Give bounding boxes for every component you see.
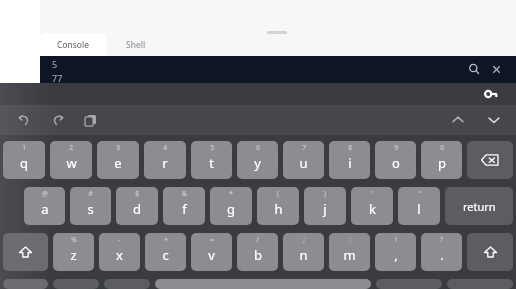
- button[interactable]: 8: [329, 141, 370, 179]
- staticText: r: [162, 154, 168, 172]
- staticText: 77: [52, 72, 63, 84]
- staticText: 7: [302, 143, 306, 152]
- staticText: 6: [256, 143, 260, 152]
- button[interactable]: Period: [376, 279, 442, 289]
- button[interactable]: 4: [144, 141, 186, 179]
- button[interactable]: /: [237, 233, 278, 271]
- button[interactable]: 1: [3, 141, 45, 179]
- button[interactable]: Previous: [446, 108, 470, 132]
- button[interactable]: Close: [486, 59, 506, 79]
- staticText: /: [256, 235, 259, 244]
- button[interactable]: Undo: [12, 108, 36, 132]
- staticText: a: [41, 200, 49, 218]
- button[interactable]: Backspace: [467, 141, 513, 179]
- staticText: +: [164, 235, 168, 244]
- staticText: s: [87, 200, 94, 218]
- button[interactable]: return: [445, 187, 513, 225]
- staticText: :: [349, 235, 351, 244]
- staticText: @: [42, 189, 48, 198]
- button[interactable]: Language: [104, 279, 150, 289]
- button[interactable]: Paste: [78, 108, 102, 132]
- staticText: 9: [394, 143, 398, 152]
- staticText: $: [135, 189, 139, 198]
- button[interactable]: 7: [283, 141, 324, 179]
- staticText: i: [348, 154, 352, 172]
- button[interactable]: !: [375, 233, 416, 271]
- staticText: h: [274, 200, 283, 218]
- staticText: 0: [440, 143, 444, 152]
- staticText: d: [133, 200, 141, 218]
- button[interactable]: ": [398, 187, 440, 225]
- button[interactable]: 5: [191, 141, 232, 179]
- staticText: q: [20, 154, 28, 172]
- staticText: o: [392, 154, 400, 172]
- staticText: c: [162, 246, 169, 264]
- button[interactable]: @: [24, 187, 65, 225]
- staticText: .: [440, 246, 444, 264]
- staticText: w: [66, 154, 77, 172]
- staticText: 2: [69, 143, 73, 152]
- staticText: 3: [116, 143, 120, 152]
- button[interactable]: ): [304, 187, 346, 225]
- button[interactable]: $: [116, 187, 158, 225]
- button[interactable]: Passwords: [480, 83, 502, 105]
- staticText: m: [343, 246, 356, 264]
- staticText: e: [114, 154, 122, 172]
- staticText: ': [371, 189, 373, 198]
- button[interactable]: (: [257, 187, 299, 225]
- button[interactable]: ;: [283, 233, 324, 271]
- staticText: ): [324, 189, 326, 198]
- staticText: 5: [210, 143, 214, 152]
- staticText: k: [369, 200, 376, 218]
- button[interactable]: Shift: [3, 233, 48, 271]
- button[interactable]: *: [210, 187, 252, 225]
- staticText: 5: [52, 58, 58, 70]
- staticText: (: [277, 189, 279, 198]
- button[interactable]: &: [163, 187, 205, 225]
- button[interactable]: +: [145, 233, 186, 271]
- staticText: g: [227, 200, 235, 218]
- button[interactable]: 2: [50, 141, 92, 179]
- button[interactable]: :: [329, 233, 370, 271]
- staticText: j: [323, 200, 327, 218]
- staticText: z: [70, 246, 77, 264]
- button[interactable]: Search: [464, 59, 484, 79]
- button[interactable]: 3: [97, 141, 139, 179]
- button[interactable]: 9: [375, 141, 416, 179]
- staticText: ;: [303, 235, 305, 244]
- button[interactable]: Shift: [467, 233, 513, 271]
- button[interactable]: Shell: [106, 33, 166, 56]
- staticText: ": [418, 189, 421, 198]
- staticText: #: [88, 189, 93, 198]
- staticText: 8: [348, 143, 352, 152]
- button[interactable]: -: [99, 233, 140, 271]
- staticText: v: [208, 246, 215, 264]
- button[interactable]: Emoji: [53, 279, 99, 289]
- staticText: *: [229, 189, 233, 198]
- staticText: l: [417, 200, 421, 218]
- button[interactable]: ': [351, 187, 393, 225]
- staticText: ,: [394, 246, 398, 264]
- button[interactable]: Redo: [46, 108, 70, 132]
- staticText: =: [210, 235, 214, 244]
- button[interactable]: =: [191, 233, 232, 271]
- button[interactable]: %: [53, 233, 94, 271]
- staticText: x: [116, 246, 123, 264]
- button[interactable]: #: [70, 187, 111, 225]
- button[interactable]: Space: [155, 279, 371, 289]
- button[interactable]: 6: [237, 141, 278, 179]
- button[interactable]: Next: [482, 108, 506, 132]
- staticText: %: [71, 235, 77, 244]
- button[interactable]: Symbols: [3, 279, 48, 289]
- button[interactable]: Console: [40, 33, 106, 56]
- staticText: -: [118, 235, 121, 244]
- button[interactable]: 0: [421, 141, 462, 179]
- staticText: p: [438, 154, 446, 172]
- staticText: f: [182, 200, 187, 218]
- staticText: Shell: [126, 39, 146, 51]
- staticText: y: [254, 154, 261, 172]
- staticText: n: [299, 246, 308, 264]
- button[interactable]: ?: [421, 233, 462, 271]
- button[interactable]: Hide keyboard: [447, 279, 513, 289]
- staticText: t: [209, 154, 214, 172]
